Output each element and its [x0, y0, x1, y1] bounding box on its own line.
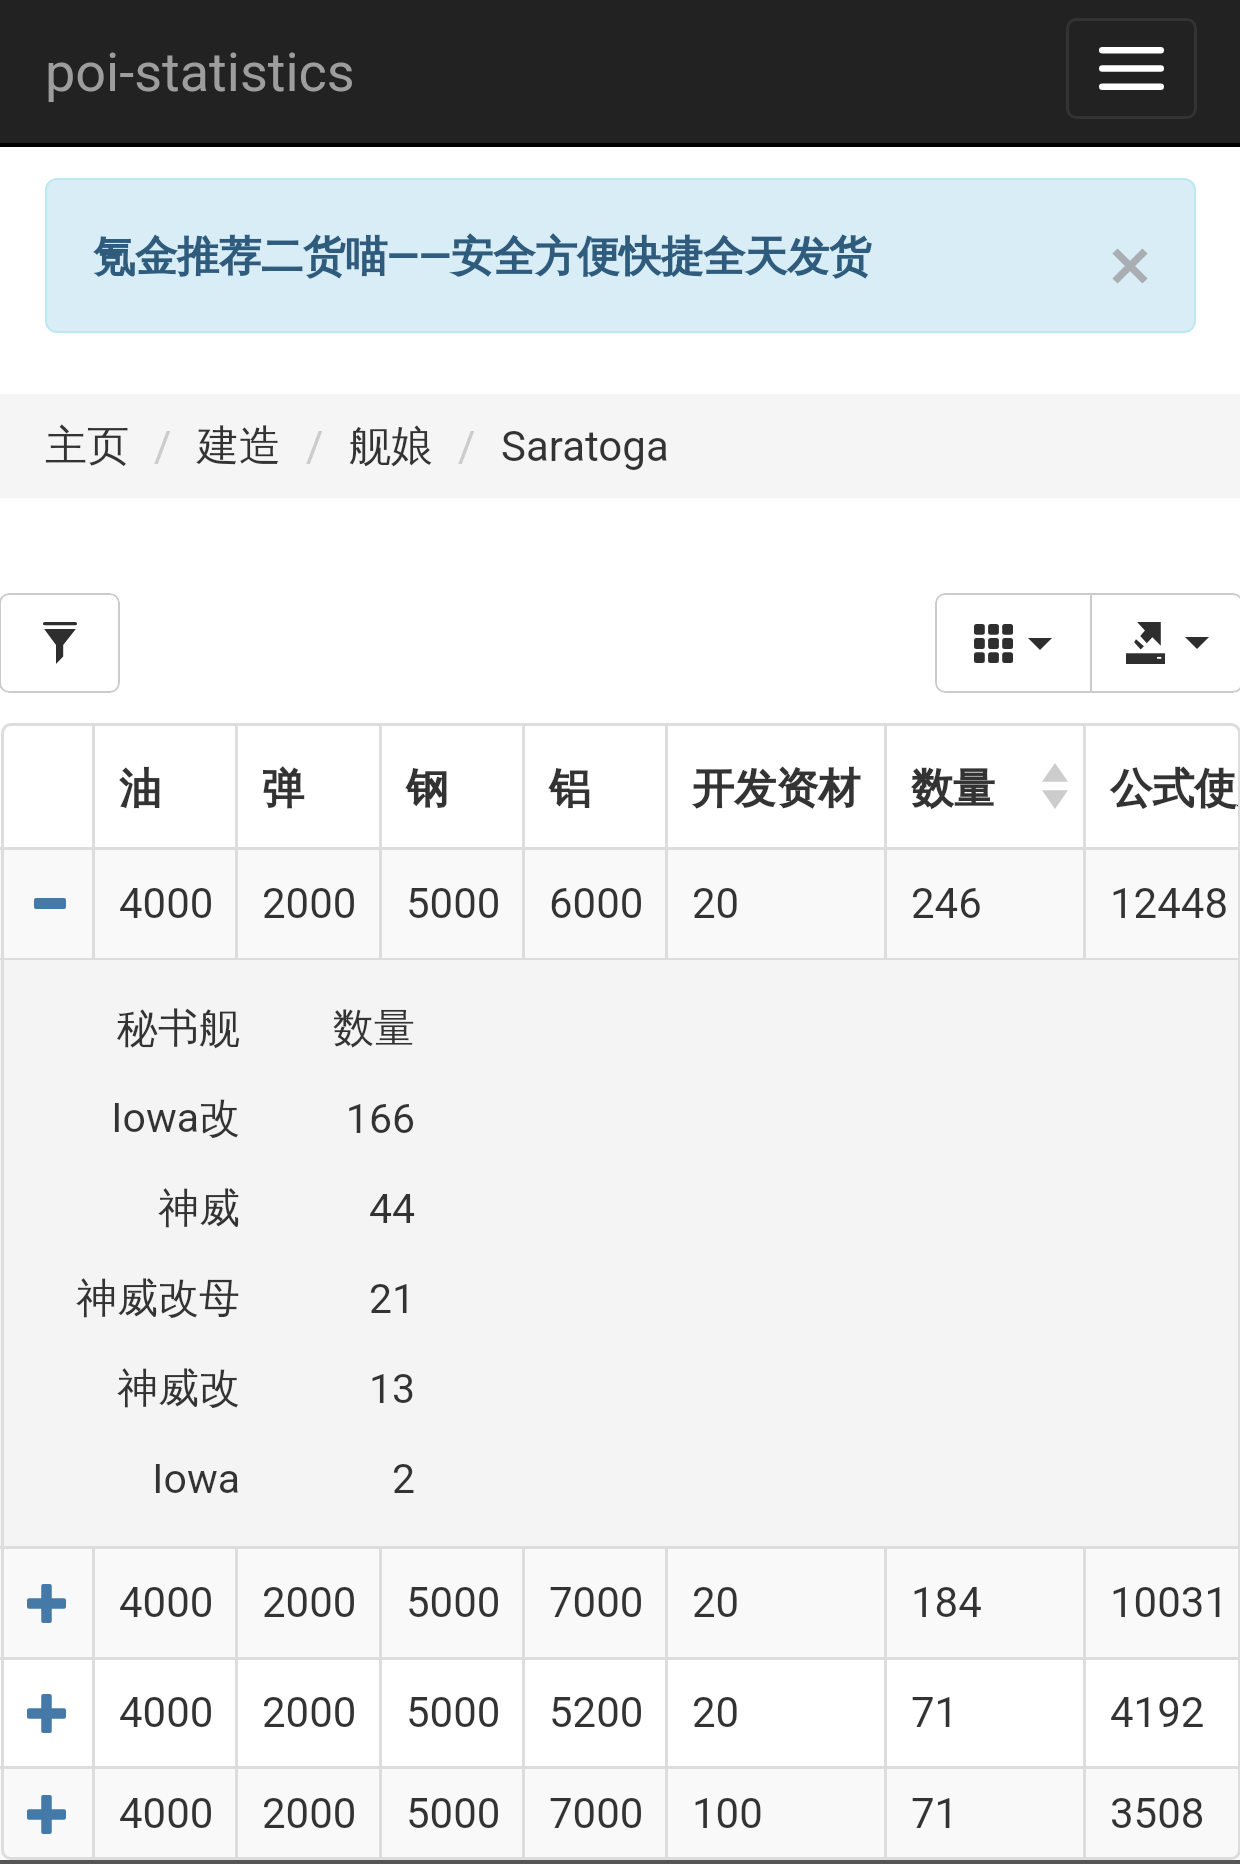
- button[interactable]: Expand row: [26, 1583, 66, 1623]
- staticText: 2000: [262, 1578, 380, 1627]
- staticText: /: [458, 422, 476, 471]
- staticText: 5200: [549, 1688, 666, 1737]
- staticText: 5000: [406, 1578, 523, 1627]
- staticText: Iowa改: [24, 1093, 240, 1145]
- staticText: 2000: [262, 1688, 380, 1737]
- staticText: 7000: [549, 1578, 666, 1627]
- button[interactable]: Filter: [0, 593, 120, 693]
- staticText: Saratoga: [501, 422, 669, 471]
- staticText: 公式使用: [1110, 763, 1240, 816]
- staticText: 秘书舰: [24, 1003, 240, 1055]
- button[interactable]: Collapse row: [30, 883, 70, 923]
- button[interactable]: Export: [1092, 593, 1240, 693]
- button[interactable]: Expand row: [26, 1794, 66, 1834]
- staticText: 246: [911, 879, 1084, 928]
- staticText: 4000: [119, 1688, 236, 1737]
- staticText: 4000: [119, 879, 236, 928]
- staticText: 100: [692, 1789, 885, 1838]
- staticText: 71: [911, 1688, 1084, 1737]
- staticText: 21: [256, 1275, 415, 1323]
- staticText: 油: [119, 763, 236, 816]
- staticText: 71: [911, 1789, 1084, 1838]
- staticText: 神威改: [24, 1363, 240, 1415]
- staticText: 2: [256, 1455, 415, 1503]
- staticText: 3508: [1110, 1789, 1240, 1838]
- staticText: 钢: [406, 763, 523, 816]
- button[interactable]: poi-statistics: [45, 41, 355, 104]
- staticText: /: [306, 422, 324, 471]
- staticText: 2000: [262, 1789, 380, 1838]
- staticText: 2000: [262, 879, 380, 928]
- staticText: 4192: [1110, 1688, 1240, 1737]
- button[interactable]: 氪金推荐二货喵——安全方便快捷全天发货: [93, 231, 871, 284]
- staticText: 数量: [256, 1003, 415, 1055]
- button[interactable]: Toggle navigation: [1066, 18, 1197, 119]
- staticText: 166: [256, 1095, 415, 1143]
- staticText: 44: [256, 1185, 415, 1233]
- staticText: Iowa: [24, 1455, 240, 1503]
- staticText: 6000: [549, 879, 666, 928]
- staticText: /: [154, 422, 172, 471]
- button[interactable]: Columns: [935, 593, 1090, 693]
- staticText: 5000: [406, 879, 523, 928]
- button[interactable]: Sort by 数量: [885, 723, 1084, 848]
- staticText: 20: [692, 1688, 885, 1737]
- staticText: 5000: [406, 1688, 523, 1737]
- button[interactable]: 主页: [45, 420, 129, 473]
- staticText: 20: [692, 1578, 885, 1627]
- staticText: 数量: [911, 763, 1084, 816]
- staticText: 7000: [549, 1789, 666, 1838]
- button[interactable]: Expand row: [26, 1693, 66, 1733]
- staticText: 铝: [549, 763, 666, 816]
- staticText: 神威改母: [24, 1273, 240, 1325]
- staticText: 10031: [1110, 1578, 1240, 1627]
- staticText: 开发资材: [692, 763, 885, 816]
- staticText: 神威: [24, 1183, 240, 1235]
- staticText: 弹: [262, 763, 380, 816]
- staticText: 12448: [1110, 879, 1240, 928]
- staticText: 5000: [406, 1789, 523, 1838]
- button[interactable]: 建造: [197, 420, 281, 473]
- staticText: 184: [911, 1578, 1084, 1627]
- button[interactable]: Close alert: [1092, 228, 1168, 304]
- staticText: 4000: [119, 1578, 236, 1627]
- button[interactable]: 舰娘: [349, 420, 433, 473]
- staticText: 4000: [119, 1789, 236, 1838]
- staticText: 13: [256, 1365, 415, 1413]
- staticText: 20: [692, 879, 885, 928]
